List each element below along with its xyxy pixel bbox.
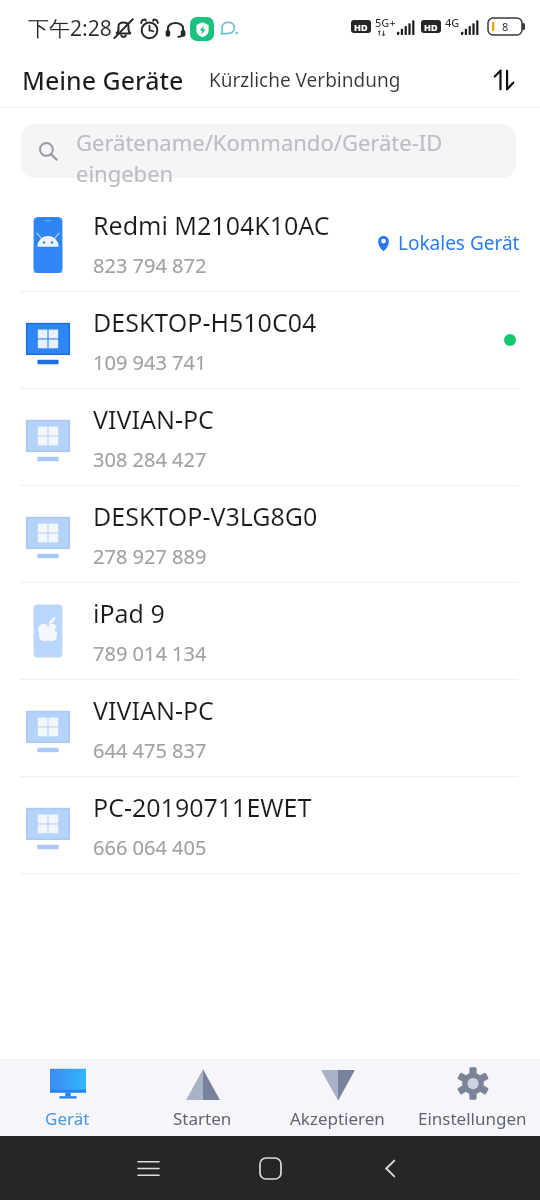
button[interactable]: Meine Geräte bbox=[22, 63, 184, 97]
button[interactable]: iPad 9 bbox=[0, 583, 540, 680]
button[interactable]: Einstellungen bbox=[405, 1060, 540, 1136]
staticText: PC-20190711EWET bbox=[93, 790, 312, 824]
staticText: Redmi M2104K10AC bbox=[93, 208, 330, 242]
button[interactable]: Gerät bbox=[0, 1060, 135, 1136]
staticText: 666 064 405 bbox=[93, 834, 207, 861]
button[interactable]: DESKTOP-H510C04 bbox=[0, 292, 540, 389]
staticText: Akzeptieren bbox=[290, 1107, 385, 1130]
staticText: Starten bbox=[173, 1107, 232, 1130]
button[interactable]: Back bbox=[368, 1146, 412, 1190]
button[interactable]: Home bbox=[248, 1146, 292, 1190]
staticText: Meine Geräte bbox=[22, 63, 184, 97]
button[interactable]: PC-20190711EWET bbox=[0, 777, 540, 874]
button[interactable]: Starten bbox=[135, 1060, 270, 1136]
button[interactable]: Akzeptieren bbox=[270, 1060, 405, 1136]
button[interactable]: Sort bbox=[484, 60, 524, 100]
staticText: DESKTOP-V3LG8G0 bbox=[93, 499, 318, 533]
staticText: 109 943 741 bbox=[93, 349, 207, 376]
staticText: 308 284 427 bbox=[93, 446, 207, 473]
staticText: 下午2:28 bbox=[28, 14, 112, 43]
staticText: 4G bbox=[445, 15, 460, 30]
staticText: Gerät bbox=[45, 1107, 90, 1130]
button[interactable]: VIVIAN-PC bbox=[0, 389, 540, 486]
staticText: iPad 9 bbox=[93, 596, 165, 630]
staticText: Kürzliche Verbindung bbox=[209, 67, 401, 93]
staticText: 644 475 837 bbox=[93, 737, 207, 764]
staticText: VIVIAN-PC bbox=[93, 402, 214, 436]
staticText: HD bbox=[354, 21, 368, 33]
button[interactable]: DESKTOP-V3LG8G0 bbox=[0, 486, 540, 583]
button[interactable]: Redmi M2104K10AC bbox=[0, 195, 540, 292]
staticText: DESKTOP-H510C04 bbox=[93, 305, 317, 339]
staticText: VIVIAN-PC bbox=[93, 693, 214, 727]
button[interactable]: Kürzliche Verbindung bbox=[209, 67, 401, 93]
staticText: 5G+ bbox=[375, 15, 396, 30]
staticText: 823 794 872 bbox=[93, 252, 207, 279]
staticText: Gerätename/Kommando/Geräte-ID eingeben bbox=[76, 127, 456, 189]
staticText: Lokales Gerät bbox=[398, 230, 520, 256]
button[interactable] bbox=[21, 124, 516, 178]
staticText: 789 014 134 bbox=[93, 640, 207, 667]
staticText: HD bbox=[424, 21, 438, 33]
staticText: 278 927 889 bbox=[93, 543, 207, 570]
button[interactable]: VIVIAN-PC bbox=[0, 680, 540, 777]
button[interactable]: Recents bbox=[126, 1146, 170, 1190]
staticText: Einstellungen bbox=[418, 1107, 527, 1130]
staticText: 8 bbox=[502, 19, 509, 34]
